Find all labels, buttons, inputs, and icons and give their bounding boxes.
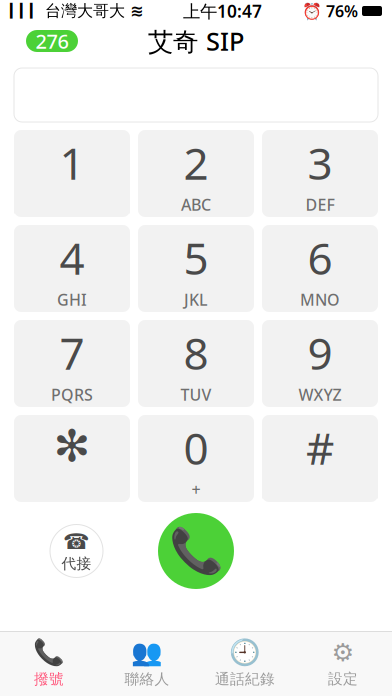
staticText: 5 bbox=[183, 228, 208, 287]
staticText: 8 bbox=[183, 323, 208, 382]
staticText: 撥號 bbox=[34, 670, 64, 688]
button[interactable]: # bbox=[262, 415, 378, 502]
staticText: ABC bbox=[181, 194, 211, 215]
button[interactable]: 🕘 bbox=[196, 632, 294, 696]
staticText: 聯絡人 bbox=[124, 670, 169, 688]
staticText: # bbox=[306, 418, 334, 477]
staticText: WXYZ bbox=[298, 384, 341, 405]
staticText: 👥 bbox=[131, 638, 163, 667]
button[interactable]: 📞 bbox=[0, 632, 98, 696]
button[interactable]: 6 bbox=[262, 225, 378, 312]
button[interactable]: ⚙ bbox=[294, 632, 392, 696]
staticText: 📞 bbox=[33, 638, 65, 667]
staticText: 9 bbox=[307, 323, 332, 382]
staticText: 設定 bbox=[328, 670, 358, 688]
staticText: 艾奇 SIP bbox=[148, 24, 244, 58]
staticText: JKL bbox=[184, 289, 208, 310]
staticText: GHI bbox=[57, 289, 87, 310]
staticText: 台灣大哥大 bbox=[40, 1, 130, 21]
button[interactable]: ☎ bbox=[50, 524, 103, 577]
button[interactable]: 4 bbox=[14, 225, 130, 312]
staticText: MNO bbox=[300, 289, 340, 310]
staticText: PQRS bbox=[51, 384, 93, 405]
staticText: 通話紀錄 bbox=[215, 670, 275, 688]
button[interactable]: 9 bbox=[262, 320, 378, 407]
staticText: 🕘 bbox=[229, 638, 261, 667]
staticText: ≋ bbox=[130, 2, 143, 20]
button[interactable]: 3 bbox=[262, 130, 378, 217]
button[interactable]: Call bbox=[158, 513, 234, 589]
button[interactable]: 8 bbox=[138, 320, 254, 407]
staticText: 4 bbox=[59, 228, 84, 287]
staticText: 代接 bbox=[61, 555, 91, 573]
staticText: ⏰ 76% bbox=[302, 0, 358, 22]
staticText: 📞 bbox=[168, 526, 223, 576]
staticText: ✻ bbox=[53, 421, 90, 471]
staticText: 276 bbox=[35, 28, 68, 54]
staticText: 6 bbox=[307, 228, 332, 287]
button[interactable]: 7 bbox=[14, 320, 130, 407]
staticText: 0 bbox=[183, 418, 208, 477]
staticText: ▎▎▎ bbox=[10, 3, 40, 18]
staticText: TUV bbox=[180, 384, 211, 405]
button[interactable]: 276 bbox=[26, 30, 78, 52]
button[interactable]: 2 bbox=[138, 130, 254, 217]
staticText: 7 bbox=[59, 323, 84, 382]
button[interactable]: ✻ bbox=[14, 415, 130, 502]
button[interactable]: 0 bbox=[138, 415, 254, 502]
staticText: ☎ bbox=[63, 529, 90, 554]
staticText: DEF bbox=[305, 194, 334, 215]
button[interactable]: 5 bbox=[138, 225, 254, 312]
staticText: 1 bbox=[59, 133, 84, 192]
staticText: ⚙ bbox=[331, 638, 354, 667]
staticText: 上午10:47 bbox=[183, 0, 262, 22]
button[interactable]: 1 bbox=[14, 130, 130, 217]
staticText: 2 bbox=[183, 133, 208, 192]
staticText: + bbox=[191, 479, 200, 500]
button[interactable]: 👥 bbox=[98, 632, 196, 696]
staticText: 3 bbox=[307, 133, 332, 192]
